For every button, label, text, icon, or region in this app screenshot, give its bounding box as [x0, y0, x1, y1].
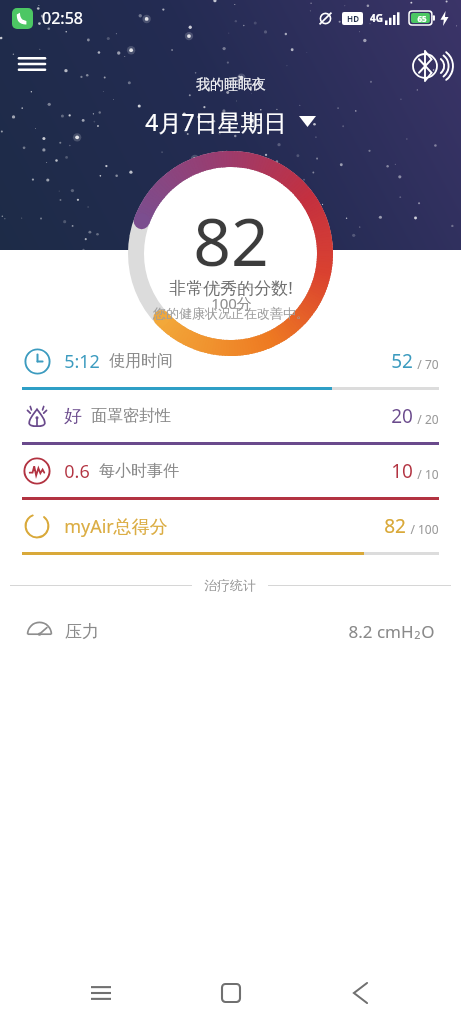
staticText: HD [347, 13, 359, 24]
staticText: 82 [193, 195, 269, 285]
staticText: / 70 [417, 356, 439, 372]
staticText: myAir总得分 [64, 514, 168, 539]
staticText: 52 [391, 348, 413, 374]
staticText: 好 [64, 405, 82, 428]
staticText: 4G [370, 11, 383, 25]
staticText: 100分 [211, 293, 252, 313]
staticText: 8.2 cmH [348, 620, 414, 643]
button[interactable]: 0.6 [0, 445, 461, 500]
staticText: / 20 [417, 411, 439, 427]
staticText: 10 [391, 458, 413, 484]
staticText: 02:58 [42, 7, 83, 29]
staticText: 0.6 [64, 459, 90, 484]
staticText: 使用时间 [109, 351, 173, 371]
staticText: 非常优秀的分数! [169, 276, 293, 299]
button[interactable]: 压力 [0, 605, 461, 657]
staticText: 压力 [65, 621, 99, 642]
staticText: 您的健康状况正在改善中。 [153, 305, 309, 321]
button[interactable]: 5:12 [0, 335, 461, 390]
staticText: 4月7日星期日 [145, 106, 287, 137]
staticText: 5:12 [64, 349, 100, 374]
button[interactable]: Bluetooth connected [403, 40, 455, 92]
staticText: 我的睡眠夜 [196, 76, 266, 94]
staticText: / 100 [410, 521, 439, 537]
staticText: 65 [417, 13, 427, 24]
button[interactable]: Menu [8, 40, 56, 88]
staticText: 每小时事件 [99, 461, 179, 481]
button[interactable]: Back [332, 965, 388, 1021]
staticText: 面罩密封性 [91, 406, 171, 426]
button[interactable]: Recents [73, 965, 129, 1021]
button[interactable]: 好 [0, 390, 461, 445]
staticText: O [421, 620, 435, 643]
staticText: 82 [384, 513, 406, 539]
staticText: 20 [391, 403, 413, 429]
button[interactable]: 4月7日星期日 [137, 104, 324, 139]
staticText: / 10 [417, 466, 439, 482]
staticText: 治疗统计 [204, 577, 256, 593]
staticText: 2 [414, 627, 421, 642]
button[interactable]: myAir总得分 [0, 500, 461, 555]
button[interactable]: Home [203, 965, 259, 1021]
